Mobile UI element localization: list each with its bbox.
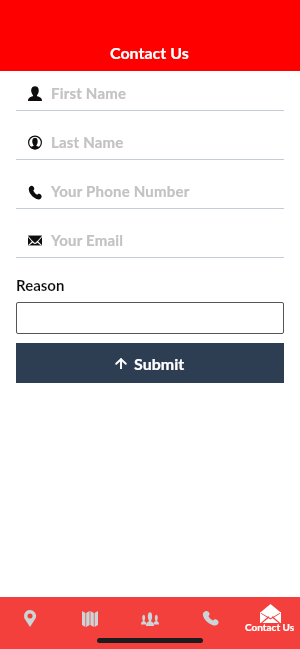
staticText: Your Email: [51, 231, 124, 249]
staticText: Contact Us: [110, 43, 189, 62]
button[interactable]: Your Phone Number: [0, 177, 300, 226]
button[interactable]: Call: [180, 597, 240, 649]
button[interactable]: Your Email: [0, 226, 300, 275]
button[interactable]: Groups: [120, 597, 180, 649]
button[interactable]: Contact Us: [240, 597, 300, 649]
button[interactable]: Last Name: [0, 128, 300, 177]
button[interactable]: Submit: [16, 343, 284, 383]
button[interactable]: Contact Us: [0, 0, 300, 71]
button[interactable]: [16, 302, 284, 334]
staticText: Submit: [134, 354, 185, 373]
staticText: Reason: [16, 276, 65, 294]
staticText: Last Name: [51, 133, 124, 151]
staticText: Contact Us: [245, 621, 295, 633]
button[interactable]: Map: [60, 597, 120, 649]
staticText: Your Phone Number: [51, 182, 190, 200]
button[interactable]: First Name: [0, 79, 300, 128]
button[interactable]: Location: [0, 597, 60, 649]
staticText: First Name: [51, 84, 127, 102]
